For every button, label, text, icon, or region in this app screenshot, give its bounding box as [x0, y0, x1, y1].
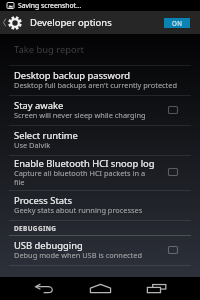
staticText: Desktop full backups aren't currently pr…	[14, 80, 177, 90]
button[interactable]: Navigate up	[0, 11, 24, 34]
button[interactable]: Take bug report	[0, 34, 200, 65]
staticText: Enable Bluetooth HCI snoop log	[14, 157, 155, 170]
staticText: DEBUGGING	[14, 224, 57, 233]
button[interactable]: Select runtime	[0, 126, 200, 155]
staticText: Stay awake	[14, 99, 64, 112]
staticText: Debug mode when USB is connected	[14, 250, 143, 260]
staticText: ON	[172, 19, 183, 27]
button[interactable]: Enable Bluetooth HCI snoop log	[0, 156, 200, 190]
staticText: Screen will never sleep while charging	[14, 110, 146, 120]
button[interactable]: Home	[72, 277, 128, 300]
button[interactable]: Back	[16, 277, 72, 300]
button[interactable]: Stay awake	[0, 96, 200, 125]
button[interactable]: Recent apps	[128, 277, 184, 300]
staticText: USB debugging	[14, 239, 83, 252]
staticText: Developer options	[30, 16, 112, 29]
button[interactable]: Process Stats	[0, 191, 200, 220]
button[interactable]: ON	[164, 18, 190, 28]
staticText: Capture all bluetooth HCI packets in a f…	[14, 168, 146, 187]
staticText: Process Stats	[14, 194, 72, 207]
staticText: Saving screenshot…	[18, 1, 82, 10]
button[interactable]: Desktop backup password	[0, 66, 200, 95]
staticText: Geeky stats about running processes	[14, 205, 143, 215]
staticText: Use Dalvik	[14, 140, 51, 150]
staticText: Select runtime	[14, 129, 78, 142]
button[interactable]: USB debugging	[0, 236, 200, 265]
staticText: Take bug report	[14, 43, 84, 56]
staticText: Desktop backup password	[14, 69, 131, 82]
